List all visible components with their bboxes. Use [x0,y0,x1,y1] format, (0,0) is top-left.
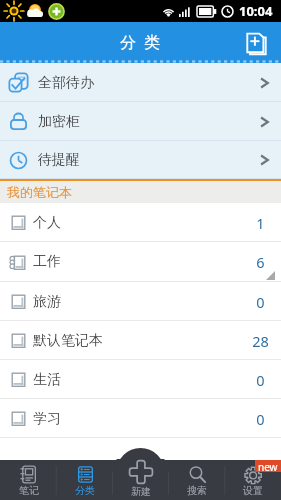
staticText: 加密柜 [38,113,80,131]
staticText: 28 [252,331,269,351]
staticText: 个人 [33,214,61,232]
staticText: 10:04 [239,2,273,20]
staticText: 分 类 [120,31,161,53]
staticText: 我的笔记本 [7,184,72,200]
staticText: 笔记 [19,484,39,497]
staticText: 生活 [33,371,61,389]
button[interactable]: 设置 [225,448,281,500]
button[interactable]: 旅游 [0,282,281,321]
button[interactable]: 默认笔记本 [0,321,281,360]
button[interactable]: 笔记 [0,448,57,500]
staticText: 设置 [243,484,263,497]
staticText: 6 [256,252,265,272]
button[interactable]: 全部待办 [0,63,281,102]
staticText: 待提醒 [38,151,80,169]
staticText: 1 [256,213,265,233]
button[interactable]: 加密柜 [0,102,281,141]
button[interactable]: 个人 [0,203,281,242]
button[interactable]: 新建笔记 [240,27,272,59]
staticText: 分类 [75,484,95,497]
staticText: 学习 [33,410,61,428]
staticText: 全部待办 [38,74,94,92]
staticText: 新建 [131,485,151,498]
staticText: 搜索 [187,484,207,497]
button[interactable]: 生活 [0,360,281,399]
staticText: 0 [256,409,265,429]
staticText: new [258,460,278,472]
staticText: 0 [256,370,265,390]
button[interactable]: 新建 [113,448,169,500]
button[interactable]: 学习 [0,399,281,438]
button[interactable]: 工作 [0,242,281,282]
staticText: 默认笔记本 [33,332,103,350]
staticText: 0 [256,292,265,312]
staticText: 旅游 [33,293,61,311]
staticText: 工作 [33,253,61,271]
button[interactable]: 待提醒 [0,141,281,179]
button[interactable]: 分类 [57,448,113,500]
button[interactable]: 搜索 [169,448,225,500]
